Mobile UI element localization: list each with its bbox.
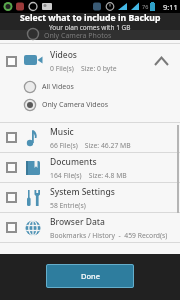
staticText: 9:11	[163, 2, 178, 12]
staticText: Only Camera Photos	[44, 31, 112, 41]
button[interactable]: Videos	[0, 44, 180, 78]
staticText: 0 File(s) Size: 0 byte	[50, 64, 117, 73]
staticText: Videos	[50, 49, 77, 61]
staticText: Done	[81, 271, 100, 281]
staticText: 58 Entrie(s)	[50, 201, 86, 210]
staticText: 164 File(s) Size: 4.8 MB	[50, 171, 127, 180]
staticText: Browser Data	[50, 216, 105, 228]
button[interactable]: Browser Data	[0, 213, 180, 242]
staticText: All Videos	[42, 82, 74, 92]
button[interactable]: Documents	[0, 153, 180, 182]
staticText: Bookmarks / History - 459 Record(s)	[50, 231, 168, 240]
button[interactable]: System Settings	[0, 183, 180, 212]
staticText: Music	[50, 126, 74, 138]
button[interactable]: Music	[0, 123, 180, 152]
button[interactable]: Only Camera Videos	[0, 96, 180, 114]
staticText: Select what to include in Backup	[20, 12, 161, 24]
button[interactable]: Done	[46, 264, 134, 288]
staticText: System Settings	[50, 186, 115, 198]
staticText: Documents	[50, 156, 97, 168]
staticText: Your plan comes with 1 GB	[49, 23, 131, 32]
staticText: 76	[142, 3, 149, 10]
button[interactable]: All Videos	[0, 78, 180, 96]
staticText: Only Camera Videos	[42, 100, 109, 110]
staticText: 66 File(s) Size: 46.27 MB	[50, 141, 131, 150]
